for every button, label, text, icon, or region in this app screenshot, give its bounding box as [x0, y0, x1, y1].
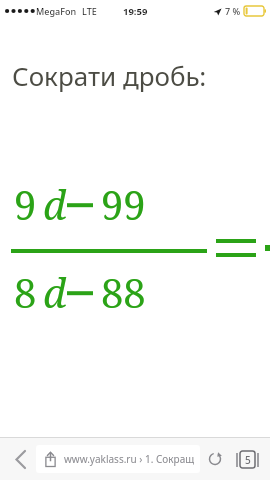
button[interactable]: Tabs, 5 open	[230, 442, 264, 476]
staticText: 5	[245, 453, 251, 467]
staticText: Сократи дробь:	[12, 58, 207, 93]
staticText: 19:59	[123, 5, 148, 18]
staticText: d	[43, 177, 67, 231]
staticText: d	[43, 265, 67, 319]
staticText: 8	[14, 265, 37, 319]
other: Share	[42, 449, 58, 469]
button[interactable]: Share	[36, 445, 200, 473]
staticText: www.yaklass.ru › 1. Сокращен	[64, 452, 194, 466]
staticText: 88	[101, 265, 146, 319]
staticText: 7 %	[225, 5, 241, 17]
button[interactable]: Reload	[200, 444, 230, 474]
staticText: 99	[101, 177, 146, 231]
staticText: LTE	[82, 5, 97, 17]
button[interactable]: Back	[6, 444, 36, 474]
staticText: MegaFon	[36, 5, 77, 17]
staticText: 9	[14, 177, 37, 231]
